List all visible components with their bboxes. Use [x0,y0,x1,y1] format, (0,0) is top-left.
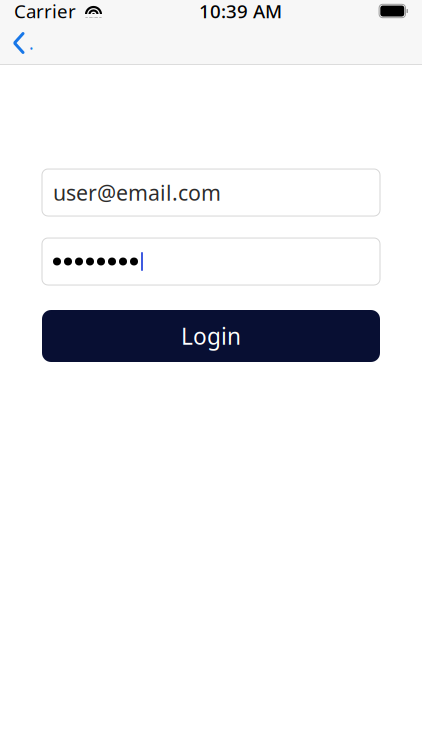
staticText: user@email.com [53,178,221,207]
staticText: Carrier [14,0,76,23]
button[interactable]: user@email.com [42,169,380,216]
button[interactable]: Login [42,310,380,362]
staticText: 10:39 AM [199,0,282,23]
button[interactable] [42,238,380,285]
staticText: Login [181,321,241,351]
staticText: . [29,31,34,54]
button[interactable]: Back [0,22,42,64]
